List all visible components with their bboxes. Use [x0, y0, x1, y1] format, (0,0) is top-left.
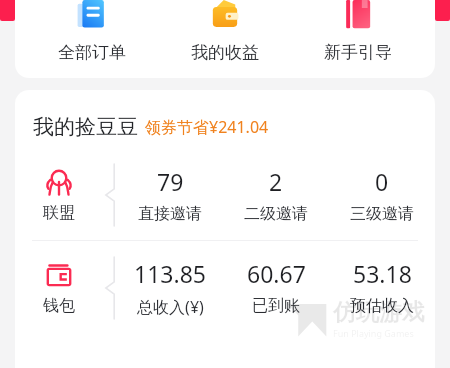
other: 联盟	[45, 168, 73, 196]
staticText: 领券节省¥241.04	[145, 116, 269, 138]
other: 我的收益	[209, 0, 241, 32]
staticText: 仿玩游戏	[333, 298, 425, 327]
button[interactable]: 钱包	[15, 257, 435, 319]
button[interactable]: 79	[117, 166, 223, 224]
staticText: 三级邀请	[350, 204, 414, 224]
staticText: 联盟	[43, 203, 75, 223]
staticText: 53.18	[353, 258, 412, 289]
button[interactable]: 113.85	[117, 258, 223, 318]
staticText: 预估收入	[350, 296, 414, 316]
staticText: 新手引导	[324, 42, 392, 63]
button[interactable]: 新手引导	[302, 0, 414, 66]
staticText: 总收入(¥)	[137, 296, 204, 318]
staticText: 0	[375, 166, 389, 197]
staticText: 已到账	[252, 296, 300, 316]
staticText: 我的收益	[191, 42, 259, 63]
staticText: 全部订单	[58, 42, 126, 63]
button[interactable]: 我的收益	[169, 0, 281, 66]
other: 新手引导	[342, 0, 374, 32]
staticText: 直接邀请	[138, 204, 202, 224]
button[interactable]: 联盟	[15, 164, 435, 226]
button[interactable]: 2	[223, 166, 329, 224]
staticText: 113.85	[134, 258, 206, 289]
other: 钱包	[45, 261, 73, 289]
button[interactable]: 53.18	[329, 258, 435, 316]
staticText: Fun Playing Games	[333, 327, 414, 339]
other: 全部订单	[76, 0, 108, 32]
staticText: 79	[157, 166, 184, 197]
button[interactable]: 全部订单	[36, 0, 148, 66]
staticText: 2	[269, 166, 283, 197]
staticText: 我的捡豆豆	[33, 114, 138, 140]
button[interactable]: 60.67	[223, 258, 329, 316]
staticText: 钱包	[43, 296, 75, 316]
staticText: 60.67	[247, 258, 306, 289]
button[interactable]: 0	[329, 166, 435, 224]
staticText: 二级邀请	[244, 204, 308, 224]
